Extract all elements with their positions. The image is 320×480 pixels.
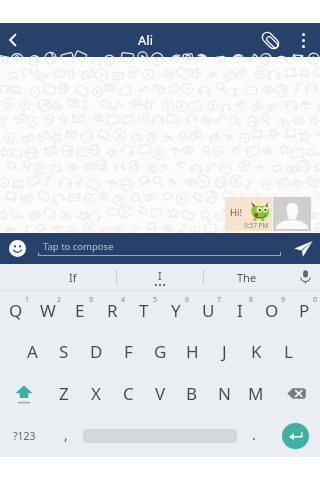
staticText: E xyxy=(75,299,85,322)
button[interactable]: Enter xyxy=(270,415,320,457)
button[interactable]: U xyxy=(192,291,224,332)
button[interactable]: Back xyxy=(0,23,24,57)
button[interactable]: J xyxy=(208,332,240,373)
staticText: ?123 xyxy=(13,429,36,443)
button[interactable]: I xyxy=(224,291,256,332)
button[interactable]: E xyxy=(64,291,96,332)
button[interactable]: The xyxy=(204,264,290,290)
button[interactable]: Z xyxy=(48,373,80,415)
staticText: 6 xyxy=(185,295,190,305)
staticText: K xyxy=(251,340,262,363)
staticText: 8 xyxy=(249,295,254,305)
button[interactable]: If xyxy=(30,264,116,290)
staticText: 3 xyxy=(89,295,94,305)
button[interactable]: Space xyxy=(83,415,237,457)
staticText: I xyxy=(237,299,243,322)
staticText: If xyxy=(69,270,77,285)
button[interactable]: , xyxy=(48,415,83,457)
staticText: F xyxy=(124,340,133,363)
staticText: M xyxy=(248,382,264,405)
staticText: 5 xyxy=(153,295,158,305)
button[interactable]: V xyxy=(144,373,176,415)
staticText: 0 xyxy=(313,295,318,305)
button[interactable]: T xyxy=(128,291,160,332)
staticText: S xyxy=(59,340,69,363)
staticText: Hi! xyxy=(230,206,243,219)
button[interactable]: Contact avatar xyxy=(273,197,311,231)
button[interactable]: Backspace xyxy=(272,373,320,415)
staticText: 1 xyxy=(25,295,30,305)
staticText: O xyxy=(265,299,279,322)
staticText: I xyxy=(158,268,162,283)
staticText: , xyxy=(64,425,68,444)
staticText: Z xyxy=(59,382,69,405)
button[interactable]: Emoji xyxy=(0,233,34,264)
staticText: 2 xyxy=(57,295,62,305)
staticText: H xyxy=(186,340,199,363)
button[interactable]: O xyxy=(256,291,288,332)
button[interactable]: Attach file xyxy=(252,23,288,57)
button[interactable]: C xyxy=(112,373,144,415)
button[interactable]: Hi! xyxy=(225,197,272,231)
button[interactable]: M xyxy=(240,373,272,415)
button[interactable]: A xyxy=(16,332,48,373)
staticText: N xyxy=(218,382,231,405)
staticText: A xyxy=(27,340,38,363)
button[interactable]: L xyxy=(272,332,304,373)
button[interactable]: W xyxy=(32,291,64,332)
button[interactable]: Y xyxy=(160,291,192,332)
staticText: L xyxy=(284,340,293,363)
staticText: J xyxy=(222,340,227,363)
button[interactable]: ?123 xyxy=(0,415,48,457)
button[interactable]: P xyxy=(288,291,320,332)
staticText: . xyxy=(252,425,256,444)
button[interactable]: H xyxy=(176,332,208,373)
staticText: 9:57 PM xyxy=(244,221,269,230)
staticText: R xyxy=(107,299,118,322)
button[interactable]: I xyxy=(117,264,203,290)
button[interactable]: B xyxy=(176,373,208,415)
staticText: D xyxy=(90,340,103,363)
button[interactable]: D xyxy=(80,332,112,373)
button[interactable]: N xyxy=(208,373,240,415)
staticText: W xyxy=(40,299,56,322)
button[interactable]: X xyxy=(80,373,112,415)
staticText: 4 xyxy=(121,295,126,305)
button[interactable]: F xyxy=(112,332,144,373)
button[interactable]: . xyxy=(237,415,270,457)
staticText: G xyxy=(154,340,167,363)
button[interactable]: Send xyxy=(286,233,320,264)
staticText: C xyxy=(123,382,134,405)
staticText: B xyxy=(186,382,198,405)
button[interactable]: R xyxy=(96,291,128,332)
button[interactable]: G xyxy=(144,332,176,373)
staticText: The xyxy=(237,270,257,285)
button[interactable]: Q xyxy=(0,291,32,332)
button[interactable]: Voice input xyxy=(290,264,320,290)
staticText: Y xyxy=(171,299,181,322)
staticText: 7 xyxy=(217,295,222,305)
staticText: V xyxy=(155,382,166,405)
button[interactable]: S xyxy=(48,332,80,373)
staticText: T xyxy=(139,299,149,322)
staticText: P xyxy=(299,299,310,322)
button[interactable]: Shift xyxy=(0,373,48,415)
staticText: Q xyxy=(9,299,23,322)
staticText: Tap to compose xyxy=(43,240,114,253)
button[interactable]: More options xyxy=(286,23,320,57)
staticText: U xyxy=(202,299,215,322)
button[interactable]: K xyxy=(240,332,272,373)
staticText: 9 xyxy=(281,295,286,305)
staticText: X xyxy=(91,382,101,405)
staticText: Ali xyxy=(138,31,154,49)
